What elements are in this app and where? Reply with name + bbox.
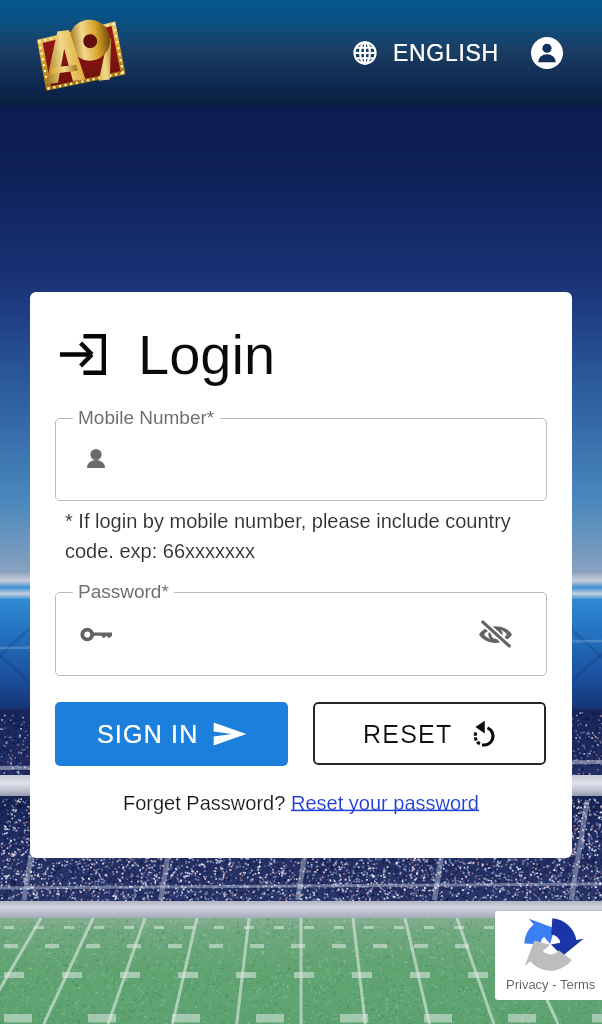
staticText: Privacy - Terms [506, 977, 596, 992]
button[interactable]: Account [526, 32, 568, 74]
button[interactable]: Show password [473, 612, 517, 656]
staticText: ENGLISH [393, 40, 499, 66]
staticText: Login [138, 323, 276, 386]
button[interactable]: ENGLISH [346, 31, 506, 75]
button[interactable]: SIGN IN [55, 702, 288, 766]
staticText: Password* [78, 581, 169, 602]
staticText: SIGN IN [97, 720, 199, 748]
button[interactable]: reCAPTCHA Privacy Terms [495, 911, 602, 1000]
button[interactable]: Show password [55, 592, 547, 676]
staticText: Mobile Number* [78, 407, 215, 428]
staticText: Forget Password? [123, 792, 291, 814]
button[interactable]: Reset your password [291, 792, 479, 814]
staticText: * If login by mobile number, please incl… [65, 510, 511, 562]
button[interactable]: RESET [313, 702, 546, 765]
staticText: RESET [363, 720, 453, 748]
button[interactable]: A9 home [30, 17, 124, 89]
button[interactable] [55, 418, 547, 501]
